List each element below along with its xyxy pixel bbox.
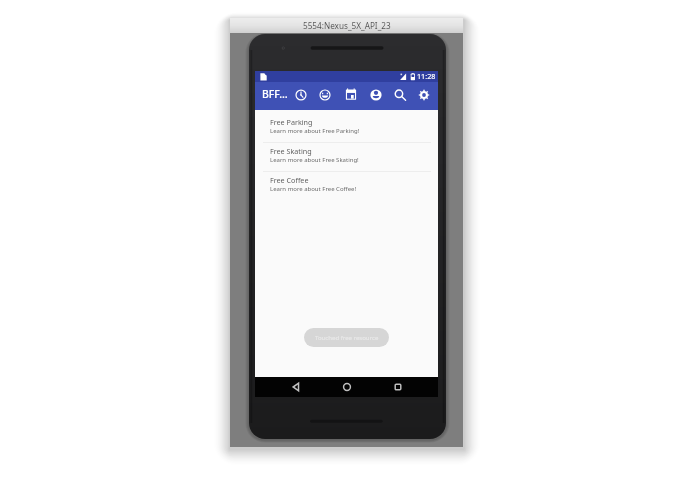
staticText: Free Skating (270, 146, 312, 156)
button[interactable]: Free Skating (255, 143, 438, 171)
staticText: BFF… (262, 87, 288, 101)
staticText: Free Parking (270, 117, 313, 127)
button[interactable]: Free Parking (255, 114, 438, 142)
button[interactable]: Calendar (340, 84, 362, 106)
staticText: 5554:Nexus_5X_API_23 (303, 20, 391, 31)
staticText: Touched free resource (315, 334, 379, 342)
button[interactable]: Search (389, 84, 411, 106)
staticText: 11:28 (417, 71, 436, 81)
button[interactable]: Clock (290, 84, 312, 106)
button[interactable]: Mood (314, 84, 336, 106)
button[interactable]: Home (336, 377, 357, 397)
button[interactable]: Settings (413, 84, 435, 106)
button[interactable]: Account (365, 84, 387, 106)
staticText: Free Coffee (270, 175, 309, 185)
staticText: Learn more about Free Coffee! (270, 185, 357, 193)
button[interactable]: Back (285, 377, 306, 397)
button[interactable]: Free Coffee (255, 172, 438, 200)
staticText: Learn more about Free Parking! (270, 127, 360, 135)
staticText: Learn more about Free Skating! (270, 156, 359, 164)
button[interactable]: BFF… (260, 82, 288, 110)
button[interactable]: Recents (387, 377, 408, 397)
